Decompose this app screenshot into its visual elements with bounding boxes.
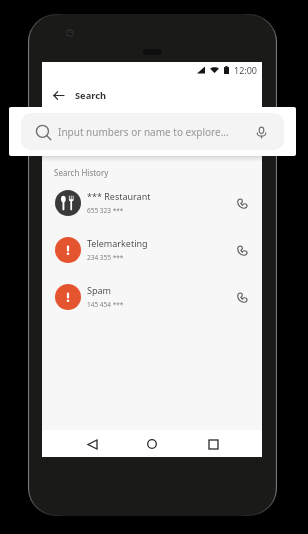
button[interactable]: Home [141, 433, 163, 455]
button[interactable]: Call [233, 241, 251, 259]
button[interactable]: Input numbers or name to explore... [21, 113, 284, 150]
button[interactable]: Telemarketing [42, 226, 262, 273]
button[interactable]: Spam [42, 273, 262, 320]
staticText: 145 454 *** [87, 300, 124, 309]
staticText: 234 355 *** [87, 253, 124, 262]
staticText: Telemarketing [87, 237, 148, 249]
staticText: Input numbers or name to explore... [58, 125, 229, 139]
staticText: Search History [54, 167, 109, 178]
button[interactable]: *** Restaurant [42, 179, 262, 226]
button[interactable]: Call [233, 288, 251, 306]
staticText: Search [75, 89, 107, 102]
staticText: Spam [87, 284, 111, 296]
button[interactable]: Back [49, 86, 67, 104]
staticText: 655 323 *** [87, 206, 124, 215]
staticText: 12:00 [234, 64, 258, 76]
staticText: *** Restaurant [87, 190, 151, 202]
button[interactable]: Recents [202, 433, 224, 455]
button[interactable]: Back [81, 433, 103, 455]
button[interactable]: Call [233, 194, 251, 212]
button[interactable]: Voice search [252, 123, 270, 141]
